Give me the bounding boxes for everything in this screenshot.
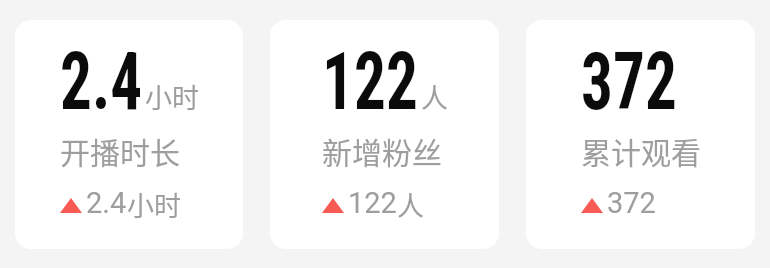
staticText: 新增粉丝 (322, 129, 442, 172)
staticText: 人 (397, 185, 424, 224)
staticText: 小时 (127, 185, 181, 224)
staticText: 累计观看 (581, 129, 701, 172)
staticText: 122 (348, 186, 397, 220)
button[interactable]: 372 (526, 20, 755, 249)
staticText: 小时 (145, 77, 199, 116)
staticText: 372 (607, 186, 656, 220)
staticText: 2.4 (60, 36, 142, 129)
button[interactable]: 2.4 (15, 20, 243, 249)
staticText: 2.4 (86, 186, 127, 220)
staticText: 122 (322, 36, 418, 129)
staticText: 开播时长 (60, 129, 180, 172)
staticText: 372 (581, 36, 677, 129)
staticText: 人 (421, 77, 448, 116)
button[interactable]: 122 (270, 20, 499, 249)
